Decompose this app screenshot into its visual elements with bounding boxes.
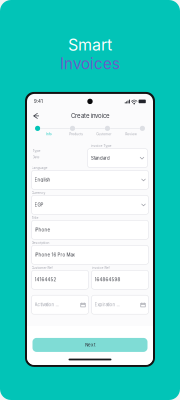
- staticText: Create invoice: [71, 112, 109, 120]
- staticText: Invoice Type: [90, 144, 111, 148]
- staticText: Activation ...: [34, 302, 58, 307]
- staticText: Invoice Ref: [91, 266, 109, 270]
- button[interactable]: Invoice Ref: [91, 266, 148, 289]
- staticText: Info: [46, 132, 52, 136]
- button[interactable]: Description: [31, 241, 148, 264]
- staticText: 164864598: [94, 277, 120, 282]
- staticText: iPhone: [34, 227, 50, 232]
- staticText: iPhone 16 Pro Max: [34, 252, 74, 257]
- staticText: Invoices: [60, 54, 120, 73]
- staticText: Description: [31, 241, 49, 245]
- staticText: Smart: [68, 35, 112, 54]
- staticText: 14164452: [34, 277, 56, 282]
- staticText: Date: [32, 155, 39, 159]
- button[interactable]: Title: [31, 216, 148, 239]
- button[interactable]: Customer Ref: [31, 266, 88, 289]
- staticText: Review: [125, 132, 137, 136]
- staticText: Expiration ...: [94, 302, 119, 307]
- staticText: Customer Ref: [31, 266, 52, 270]
- staticText: Language: [31, 166, 47, 170]
- staticText: Standard: [91, 155, 110, 161]
- button[interactable]: Language: [31, 166, 148, 189]
- staticText: Type: [32, 149, 40, 153]
- button[interactable]: [91, 291, 148, 314]
- staticText: Currency: [31, 191, 45, 195]
- button[interactable]: Invoice Type: [86, 142, 148, 170]
- staticText: Next: [85, 342, 95, 348]
- staticText: EGP: [34, 202, 43, 207]
- button[interactable]: Back: [33, 113, 39, 119]
- staticText: Title: [31, 216, 38, 220]
- button[interactable]: Next: [32, 338, 147, 352]
- staticText: English: [34, 177, 50, 182]
- button[interactable]: Currency: [31, 191, 148, 214]
- button[interactable]: [31, 291, 88, 314]
- staticText: 9:41: [34, 99, 43, 104]
- staticText: Customer: [96, 132, 111, 136]
- button[interactable]: Type: [31, 142, 148, 164]
- staticText: Products: [69, 132, 83, 136]
